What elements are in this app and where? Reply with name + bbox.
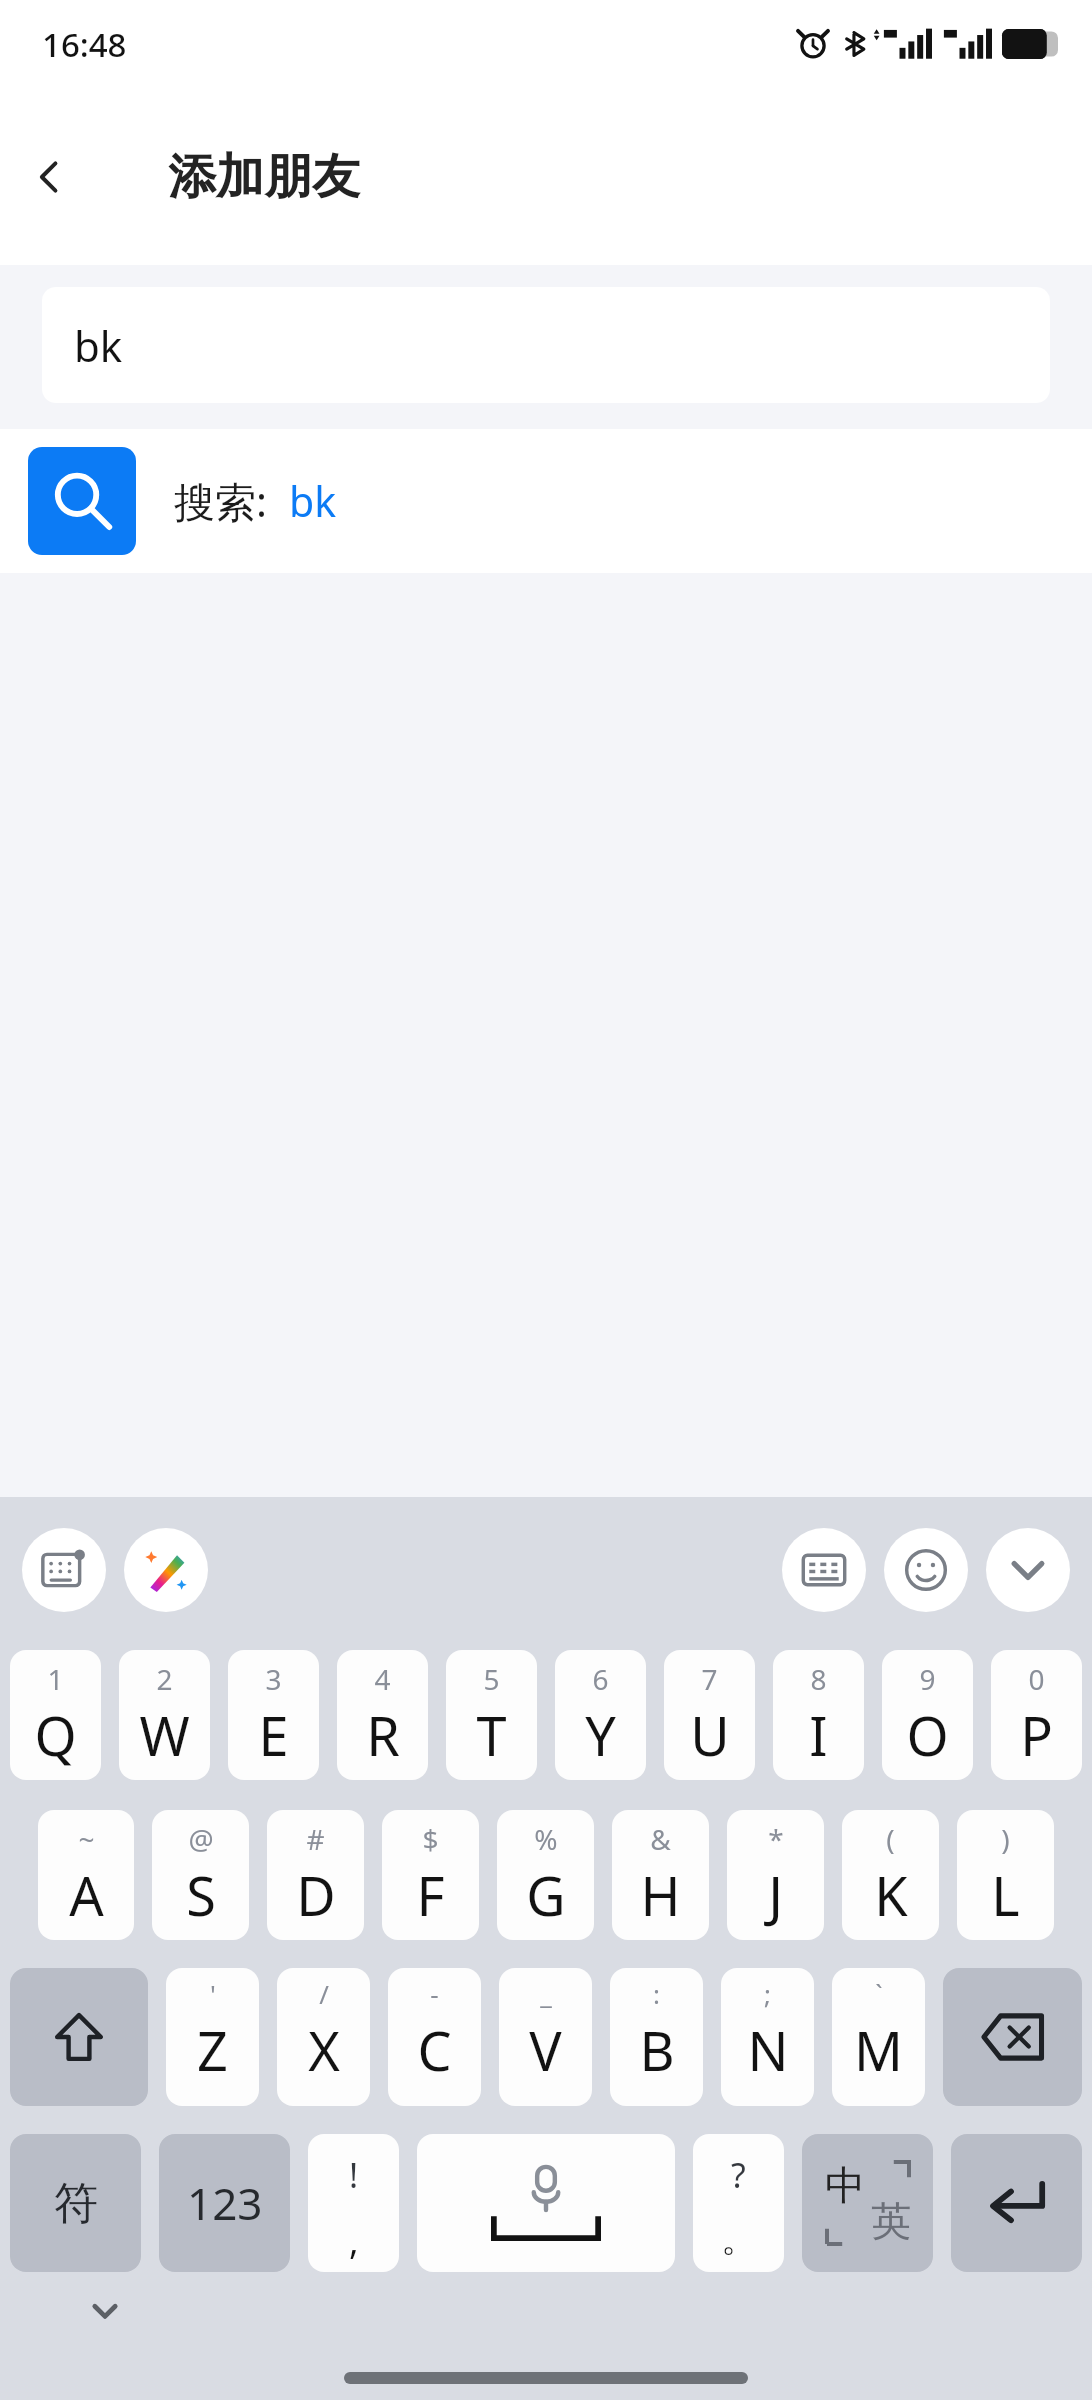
staticText: Q xyxy=(34,1698,77,1772)
button[interactable]: ' xyxy=(166,1968,259,2106)
button[interactable]: bk xyxy=(42,287,1050,403)
button[interactable]: ) xyxy=(957,1810,1054,1940)
staticText: & xyxy=(650,1820,671,1858)
staticText: N xyxy=(747,2013,789,2087)
button[interactable]: Space xyxy=(417,2134,675,2272)
staticText: R xyxy=(366,1698,400,1772)
staticText: 符 xyxy=(54,2176,98,2231)
button[interactable]: $ xyxy=(382,1810,479,1940)
staticText: bk xyxy=(74,317,123,374)
staticText: ' xyxy=(210,1976,216,2011)
staticText: B xyxy=(639,2013,675,2087)
button[interactable]: Hide keyboard xyxy=(986,1528,1070,1612)
staticText: 2 xyxy=(156,1660,173,1698)
button[interactable]: AI writing xyxy=(124,1528,208,1612)
staticText: 4 xyxy=(374,1660,391,1698)
button[interactable]: Keyboard layout xyxy=(782,1528,866,1612)
staticText: P xyxy=(1020,1698,1053,1772)
staticText: 123 xyxy=(187,2173,263,2233)
button[interactable]: & xyxy=(612,1810,709,1940)
button[interactable]: - xyxy=(388,1968,481,2106)
button[interactable]: 6 xyxy=(555,1650,646,1780)
staticText: , xyxy=(349,2216,359,2265)
button[interactable]: Switch Chinese English xyxy=(802,2134,933,2272)
staticText: ; xyxy=(764,1976,771,2011)
button[interactable]: Shift xyxy=(10,1968,148,2106)
button[interactable]: Emoji xyxy=(884,1528,968,1612)
staticText: M xyxy=(854,2013,903,2087)
staticText: V xyxy=(529,2013,562,2087)
button[interactable]: ! xyxy=(308,2134,399,2272)
button[interactable]: Keyboard settings xyxy=(22,1528,106,1612)
staticText: C xyxy=(417,2013,452,2087)
button[interactable]: 9 xyxy=(882,1650,973,1780)
button[interactable]: / xyxy=(277,1968,370,2106)
button[interactable]: @ xyxy=(152,1810,249,1940)
button[interactable]: _ xyxy=(499,1968,592,2106)
button[interactable]: 7 xyxy=(664,1650,755,1780)
staticText: 英 xyxy=(871,2196,911,2246)
staticText: L xyxy=(991,1858,1020,1932)
staticText: F xyxy=(416,1858,445,1932)
button[interactable]: ? xyxy=(693,2134,784,2272)
staticText: H xyxy=(640,1858,681,1932)
staticText: Y xyxy=(585,1698,616,1772)
staticText: S xyxy=(186,1858,216,1932)
button[interactable]: 1 xyxy=(10,1650,101,1780)
staticText: _ xyxy=(540,1976,552,2011)
button[interactable]: % xyxy=(497,1810,594,1940)
staticText: 9 xyxy=(919,1660,936,1698)
staticText: I xyxy=(809,1698,828,1772)
button[interactable]: Enter xyxy=(951,2134,1082,2272)
staticText: ? xyxy=(731,2152,746,2198)
staticText: ! xyxy=(349,2152,359,2198)
staticText: 中 xyxy=(825,2160,865,2210)
staticText: ~ xyxy=(78,1820,95,1858)
staticText: 6 xyxy=(592,1660,609,1698)
button[interactable]: * xyxy=(727,1810,824,1940)
staticText: ) xyxy=(1001,1820,1010,1858)
button[interactable]: Back xyxy=(12,139,88,215)
staticText: K xyxy=(874,1858,908,1932)
staticText: J xyxy=(768,1858,783,1932)
button[interactable]: ; xyxy=(721,1968,814,2106)
button[interactable]: : xyxy=(610,1968,703,2106)
button[interactable]: 123 xyxy=(159,2134,290,2272)
button[interactable]: 0 xyxy=(991,1650,1082,1780)
staticText: ` xyxy=(875,1976,883,2011)
staticText: 5 xyxy=(483,1660,500,1698)
button[interactable]: Backspace xyxy=(943,1968,1082,2106)
staticText: 1 xyxy=(47,1660,64,1698)
staticText: W xyxy=(139,1698,190,1772)
staticText: % xyxy=(534,1820,558,1858)
staticText: G xyxy=(526,1858,566,1932)
staticText: O xyxy=(906,1698,949,1772)
staticText: 0 xyxy=(1028,1660,1045,1698)
staticText: U xyxy=(690,1698,730,1772)
button[interactable]: 5 xyxy=(446,1650,537,1780)
staticText: : xyxy=(653,1976,660,2011)
staticText: - xyxy=(430,1976,439,2011)
button[interactable]: 3 xyxy=(228,1650,319,1780)
staticText: ( xyxy=(886,1820,895,1858)
staticText: D xyxy=(296,1858,336,1932)
button[interactable]: 搜索: xyxy=(0,429,1092,573)
button[interactable]: Collapse keyboard xyxy=(72,2278,138,2344)
button[interactable]: ( xyxy=(842,1810,939,1940)
button[interactable]: 8 xyxy=(773,1650,864,1780)
staticText: 搜索: xyxy=(174,473,267,529)
button[interactable]: 符 xyxy=(10,2134,141,2272)
staticText: @ xyxy=(188,1820,214,1858)
staticText: E xyxy=(258,1698,289,1772)
staticText: bk xyxy=(289,473,337,529)
staticText: # xyxy=(306,1820,325,1858)
staticText: 7 xyxy=(701,1660,718,1698)
staticText: 添加朋友 xyxy=(168,147,360,207)
button[interactable]: 4 xyxy=(337,1650,428,1780)
staticText: Z xyxy=(197,2013,228,2087)
button[interactable]: ~ xyxy=(38,1810,134,1940)
button[interactable]: 2 xyxy=(119,1650,210,1780)
button[interactable]: ` xyxy=(832,1968,925,2106)
staticText: 3 xyxy=(265,1660,282,1698)
button[interactable]: # xyxy=(267,1810,364,1940)
